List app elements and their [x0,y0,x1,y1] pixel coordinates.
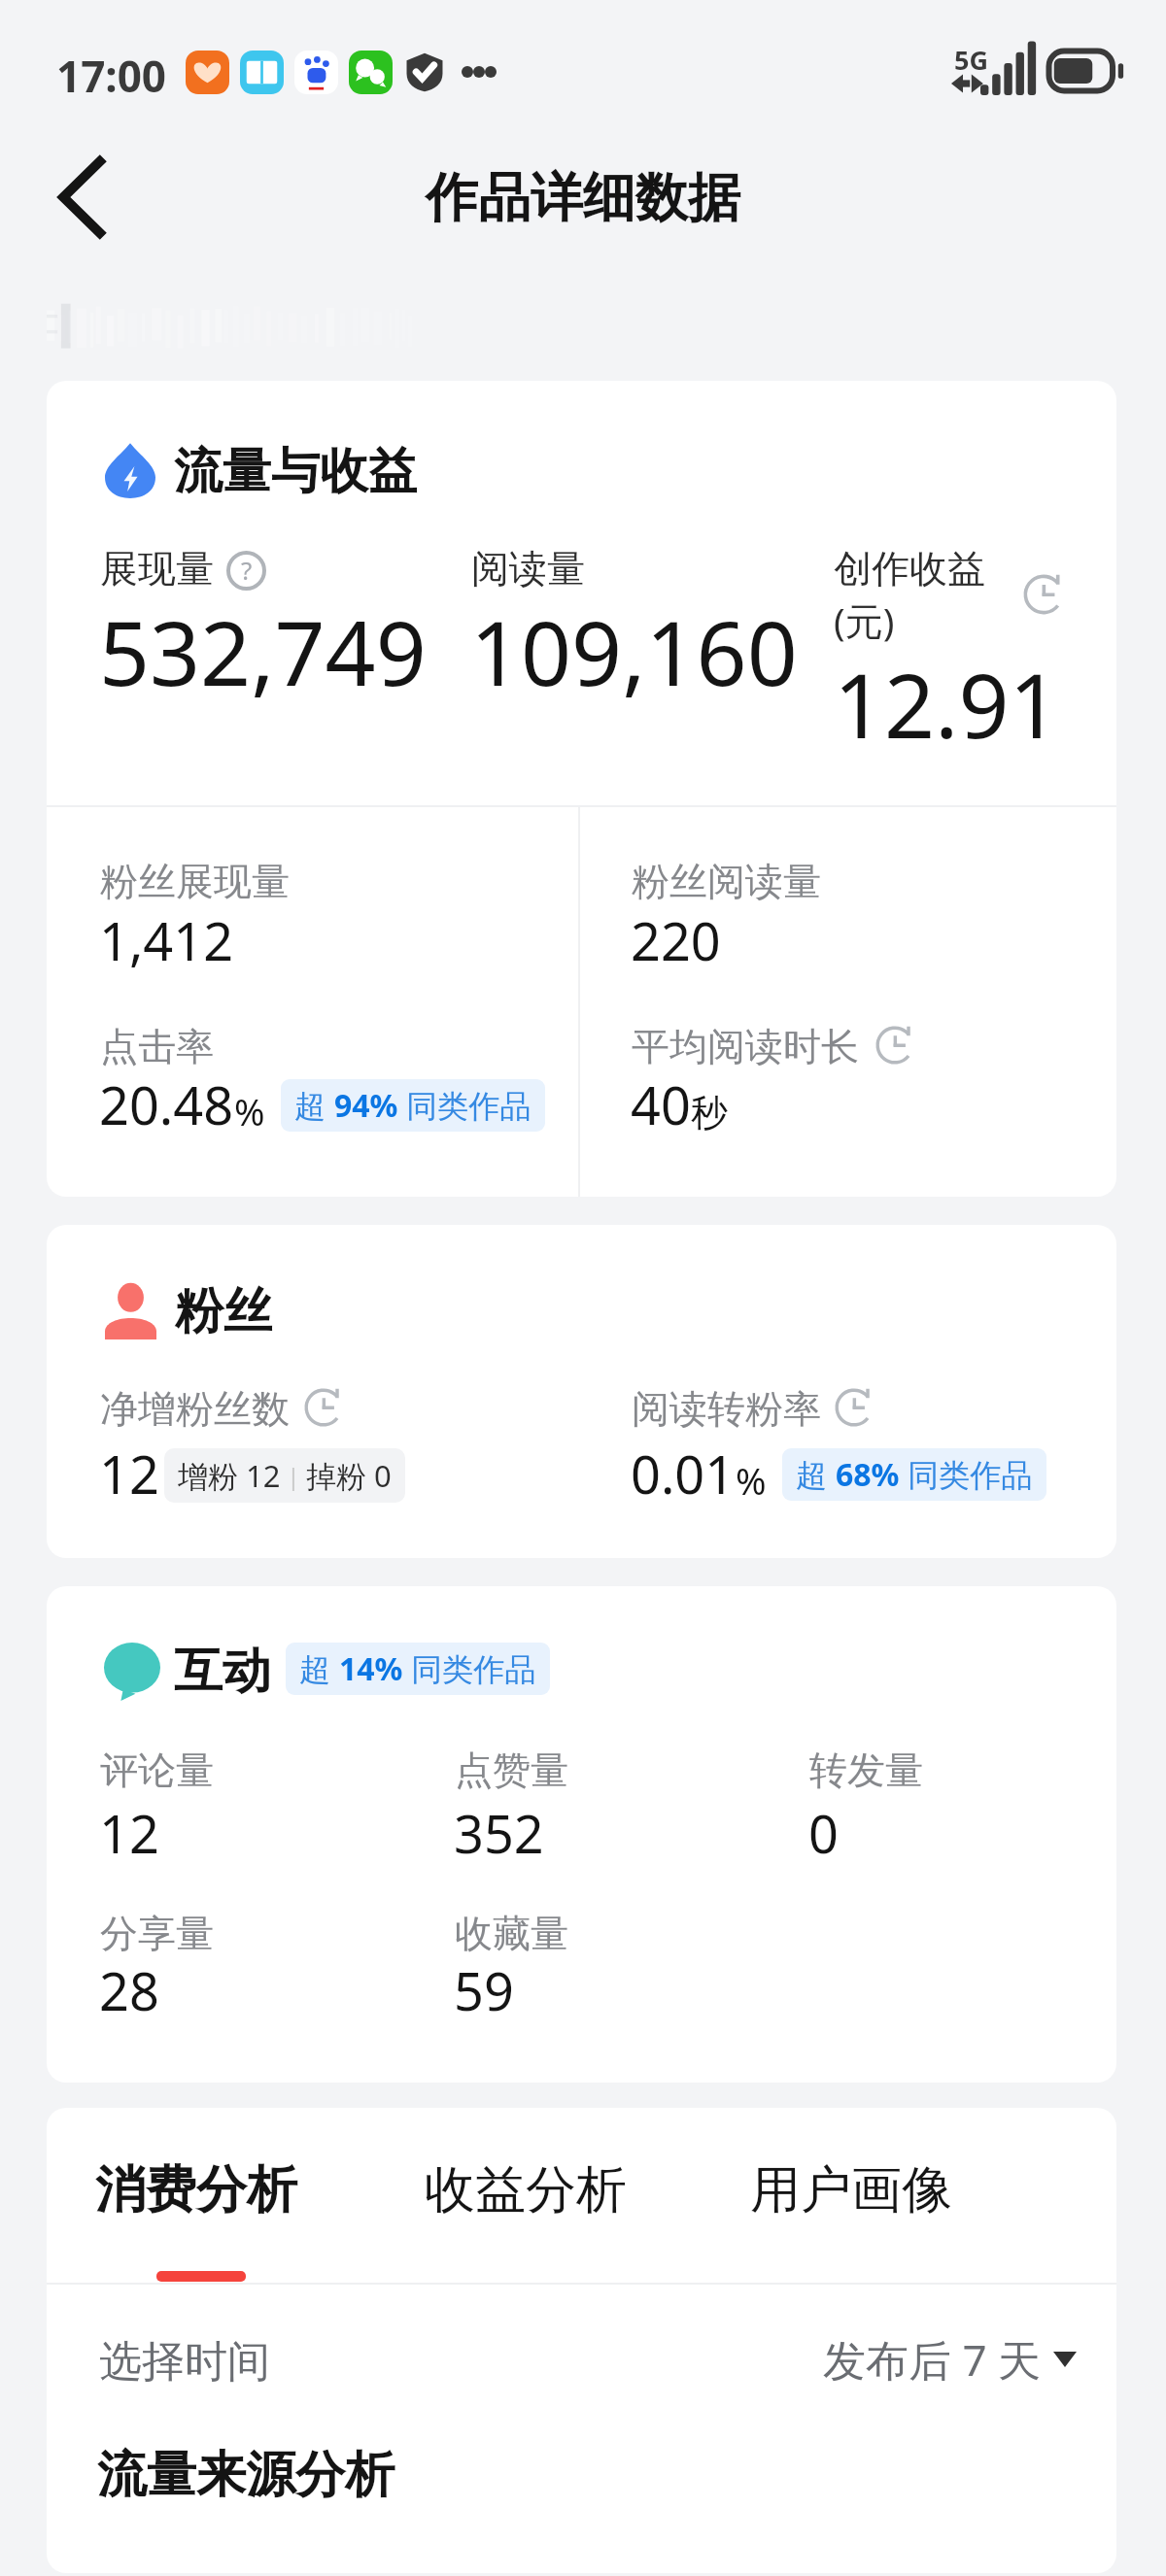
staticText: % [234,1086,265,1136]
staticText: 净增粉丝数 [100,1385,290,1433]
staticText: 点击率 [100,1023,214,1070]
staticText: 超 [294,1084,334,1127]
staticText: 增粉 12 [178,1455,281,1496]
staticText: 532,749 [99,592,427,712]
button[interactable]: Back [37,153,126,242]
staticText: 68% [836,1453,900,1496]
staticText: 352 [454,1797,544,1869]
staticText: 0 [808,1797,839,1869]
staticText: 94% [334,1084,398,1127]
staticText: 1,412 [99,904,234,976]
staticText: (元) [834,594,895,646]
staticText: 109,160 [470,592,798,712]
staticText: 17:00 [56,47,167,97]
staticText: ? [241,553,253,587]
staticText: 粉丝展现量 [100,858,290,905]
staticText: 用户画像 [750,2158,952,2222]
staticText: 粉丝阅读量 [632,858,821,905]
staticText: 收藏量 [455,1910,568,1957]
staticText: 选择时间 [99,2335,270,2389]
staticText: 同类作品 [900,1453,1033,1496]
staticText: 40 [631,1068,691,1140]
staticText: 转发量 [809,1746,923,1794]
staticText: 同类作品 [398,1084,532,1127]
staticText: 14% [339,1647,403,1690]
staticText: 秒 [691,1090,728,1136]
staticText: 5G [954,42,988,78]
staticText: 12.91 [834,644,1060,764]
staticText: 粉丝 [175,1281,272,1342]
staticText: 消费分析 [95,2158,297,2222]
staticText: 12 [99,1797,159,1869]
staticText: 12 [99,1438,159,1509]
button[interactable]: Help: what is 展现量 [226,551,266,591]
staticText: 创作收益 [834,545,985,593]
staticText: 阅读量 [471,545,585,593]
staticText: 0.01 [631,1438,736,1509]
staticText: 超 [299,1647,339,1690]
staticText: 59 [454,1954,514,2026]
staticText: 分享量 [100,1910,214,1957]
staticText: 发布后 7 天 [823,2330,1042,2389]
staticText: 220 [631,904,721,976]
staticText: 平均阅读时长 [632,1023,859,1070]
staticText: 20.48 [99,1068,234,1140]
button[interactable]: 用户画像 [746,2149,956,2232]
staticText: 28 [99,1954,159,2026]
staticText: 流量与收益 [174,441,417,502]
button[interactable]: Data refresh delay info [834,1387,874,1428]
staticText: | [281,1460,306,1492]
staticText: 互动 [174,1641,271,1702]
button[interactable]: 收益分析 [421,2149,631,2232]
staticText: 收益分析 [425,2158,627,2222]
staticText: 阅读转粉率 [632,1385,821,1433]
button[interactable]: 消费分析 [91,2149,301,2232]
button[interactable]: Data refresh delay info [1022,573,1065,616]
staticText: 掉粉 0 [306,1455,392,1496]
staticText: 点赞量 [455,1746,568,1794]
staticText: 超 [796,1453,836,1496]
staticText: % [736,1455,767,1506]
staticText: 同类作品 [403,1647,536,1690]
staticText: 作品详细数据 [426,165,740,231]
button[interactable]: Data refresh delay info [874,1025,915,1066]
button[interactable]: Data refresh delay info [303,1387,344,1428]
staticText: 评论量 [100,1746,214,1794]
staticText: 流量来源分析 [97,2444,394,2506]
button[interactable]: 发布后 7 天 [819,2326,1080,2392]
staticText: 展现量 [100,545,214,593]
